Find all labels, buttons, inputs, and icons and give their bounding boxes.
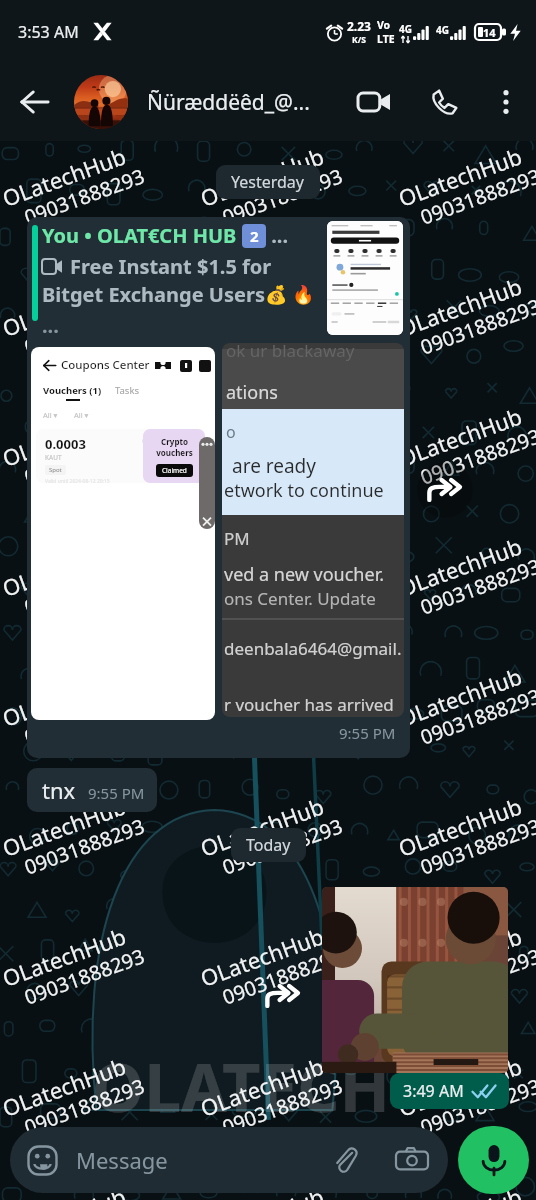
- staticText: Free Instant $1.5 for: [70, 253, 272, 280]
- staticText: All ▾: [74, 410, 89, 420]
- staticText: OLatechHub: [0, 271, 130, 343]
- staticText: 09031888293: [218, 552, 346, 621]
- staticText: Bitget Exchange Users: [42, 281, 265, 308]
- staticText: OLatechHub: [196, 921, 328, 993]
- button[interactable]: Today: [231, 828, 306, 862]
- button[interactable]: Video: [322, 887, 508, 1073]
- staticText: 💰: [265, 284, 288, 305]
- staticText: 09031888293: [20, 682, 148, 751]
- button[interactable]: Voice message: [458, 1126, 529, 1194]
- staticText: 09031888293: [20, 812, 148, 881]
- staticText: OLatechHub: [196, 1181, 328, 1200]
- button[interactable]: tnx: [27, 768, 157, 812]
- staticText: OLATECH: [92, 1041, 391, 1131]
- staticText: 09031888293: [20, 422, 148, 491]
- staticText: OLatechHub: [196, 661, 328, 733]
- button[interactable]: 3:49 AM: [390, 1073, 509, 1109]
- staticText: OLatechHub: [196, 11, 328, 83]
- staticText: OLatechHub: [0, 1051, 130, 1123]
- staticText: OLatechHub: [0, 921, 130, 993]
- staticText: 09031888293: [218, 682, 346, 751]
- staticText: Ñüræddëêd_@...: [147, 88, 350, 117]
- staticText: OLatechHub: [0, 531, 130, 603]
- staticText: 2.23: [347, 18, 371, 34]
- staticText: Vouchers (1): [43, 384, 102, 397]
- button[interactable]: More options: [484, 80, 528, 124]
- button[interactable]: Video call: [350, 78, 398, 126]
- staticText: 09031888293: [416, 1072, 536, 1141]
- staticText: OLatechHub: [0, 141, 130, 213]
- staticText: 09031888293: [20, 32, 148, 101]
- staticText: deenbala6464@gmail.com: [224, 637, 404, 660]
- staticText: 09031888293: [416, 812, 536, 881]
- staticText: 09031888293: [416, 682, 536, 751]
- staticText: o: [226, 421, 404, 443]
- staticText: OLatechHub: [196, 531, 328, 603]
- staticText: OLatechHub: [196, 791, 328, 863]
- staticText: KAUT: [45, 453, 62, 462]
- staticText: etwork to continue: [224, 478, 404, 503]
- staticText: Tasks: [115, 384, 140, 397]
- staticText: 09031888293: [20, 942, 148, 1011]
- staticText: 09031888293: [20, 1072, 148, 1141]
- staticText: Vo: [377, 18, 391, 32]
- staticText: OLatechHub: [196, 401, 328, 473]
- staticText: 09031888293: [218, 1072, 346, 1141]
- staticText: OLatechHub: [0, 791, 130, 863]
- button[interactable]: You • OLAT€CH HUB: [27, 217, 410, 758]
- button[interactable]: Camera: [396, 1144, 428, 1176]
- staticText: 09031888293: [218, 812, 346, 881]
- button[interactable]: Call: [420, 78, 468, 126]
- staticText: OLatechHub: [394, 531, 526, 603]
- staticText: OLatechHub: [0, 661, 130, 733]
- staticText: 09031888293: [218, 942, 346, 1011]
- staticText: 09031888293: [416, 552, 536, 621]
- staticText: LTE: [377, 32, 395, 46]
- staticText: OLatechHub: [394, 401, 526, 473]
- staticText: 4G: [436, 23, 449, 37]
- staticText: ons Center. Update your a: [224, 587, 404, 610]
- staticText: vouchers: [156, 447, 193, 458]
- button[interactable]: Profile photo: [74, 75, 128, 129]
- button[interactable]: Back: [10, 77, 60, 127]
- button[interactable]: Yesterday: [216, 165, 320, 199]
- staticText: 09031888293: [416, 32, 536, 101]
- staticText: 9:55 PM: [88, 783, 145, 803]
- button[interactable]: Attach: [330, 1145, 360, 1175]
- staticText: tnx: [42, 775, 76, 805]
- staticText: 9:55 PM: [339, 723, 396, 743]
- staticText: You • OLAT€CH HUB: [42, 222, 242, 249]
- button[interactable]: Forward: [417, 462, 473, 518]
- staticText: 09031888293: [20, 292, 148, 361]
- staticText: OLatechHub: [394, 11, 526, 83]
- button[interactable]: Emoji: [27, 1145, 58, 1176]
- staticText: OLatechHub: [394, 661, 526, 733]
- button[interactable]: Forward: [255, 968, 311, 1024]
- staticText: 09031888293: [218, 422, 346, 491]
- staticText: OLatechHub: [394, 271, 526, 343]
- staticText: OLatechHub: [394, 791, 526, 863]
- staticText: ...: [42, 312, 59, 339]
- staticText: OLatechHub: [196, 141, 328, 213]
- staticText: 3:53 AM: [18, 21, 79, 43]
- staticText: OLatechHub: [394, 141, 526, 213]
- staticText: ok ur blackaway: [226, 343, 404, 362]
- staticText: 09031888293: [20, 162, 148, 231]
- staticText: ved a new voucher. Cryp: [224, 562, 404, 587]
- staticText: Coupons Center: [61, 357, 150, 373]
- staticText: OLatechHub: [196, 271, 328, 343]
- staticText: OLatechHub: [0, 11, 130, 83]
- staticText: 09031888293: [218, 292, 346, 361]
- staticText: Claimed: [162, 466, 187, 475]
- staticText: 09031888293: [416, 162, 536, 231]
- staticText: K/S: [352, 34, 366, 46]
- staticText: OLatechHub: [0, 401, 130, 473]
- staticText: OLatechHub: [394, 1051, 526, 1123]
- button[interactable]: Emoji: [10, 1127, 448, 1193]
- staticText: Spot: [49, 466, 62, 474]
- staticText: OLatechHub: [0, 1181, 130, 1200]
- staticText: All ▾: [43, 410, 58, 420]
- staticText: OLatechHub: [196, 1051, 328, 1123]
- staticText: ations: [226, 380, 404, 405]
- staticText: OLatechHub: [394, 921, 526, 993]
